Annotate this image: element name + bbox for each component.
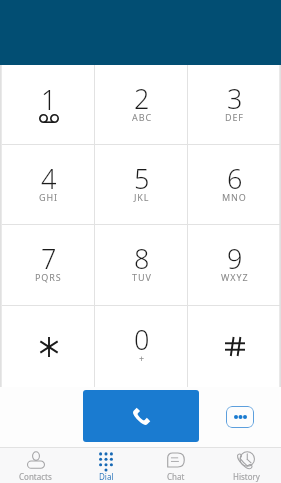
button[interactable]: 8 — [95, 225, 188, 306]
button[interactable] — [2, 306, 95, 387]
button[interactable]: Chat — [141, 447, 211, 483]
button[interactable] — [83, 390, 199, 442]
staticText: GHI — [39, 191, 58, 203]
button[interactable]: 7 — [2, 225, 95, 306]
staticText: 5 — [134, 160, 150, 197]
staticText: TUV — [132, 271, 152, 283]
button[interactable]: 2 — [95, 65, 188, 145]
button[interactable]: Contacts — [0, 447, 71, 483]
staticText: WXYZ — [221, 271, 249, 283]
button[interactable]: 5 — [95, 145, 188, 225]
staticText: 1 — [41, 81, 57, 118]
button[interactable]: More options — [226, 406, 254, 428]
staticText: DEF — [225, 111, 244, 123]
button[interactable]: 6 — [188, 145, 281, 225]
button[interactable]: 1 — [2, 65, 95, 145]
staticText: 6 — [227, 160, 243, 197]
button[interactable]: Dial — [71, 447, 141, 483]
staticText: 4 — [41, 160, 57, 197]
staticText: JKL — [134, 191, 150, 203]
staticText: 2 — [134, 80, 150, 117]
staticText: PQRS — [35, 271, 62, 283]
staticText: + — [139, 352, 146, 364]
button[interactable]: 3 — [188, 65, 281, 145]
button[interactable]: History — [211, 447, 281, 483]
staticText: Chat — [167, 471, 185, 482]
staticText: ABC — [132, 111, 152, 123]
staticText: Contacts — [19, 471, 52, 482]
staticText: 9 — [227, 240, 243, 277]
staticText: Dial — [99, 471, 114, 482]
button[interactable]: 4 — [2, 145, 95, 225]
button[interactable]: 9 — [188, 225, 281, 306]
staticText: 7 — [41, 240, 57, 277]
button[interactable]: 0 — [95, 306, 188, 387]
button[interactable] — [188, 306, 281, 387]
staticText: MNO — [222, 191, 247, 203]
staticText: History — [233, 471, 260, 482]
staticText: 3 — [227, 80, 243, 117]
staticText: 8 — [134, 240, 150, 277]
staticText: 0 — [134, 321, 150, 358]
